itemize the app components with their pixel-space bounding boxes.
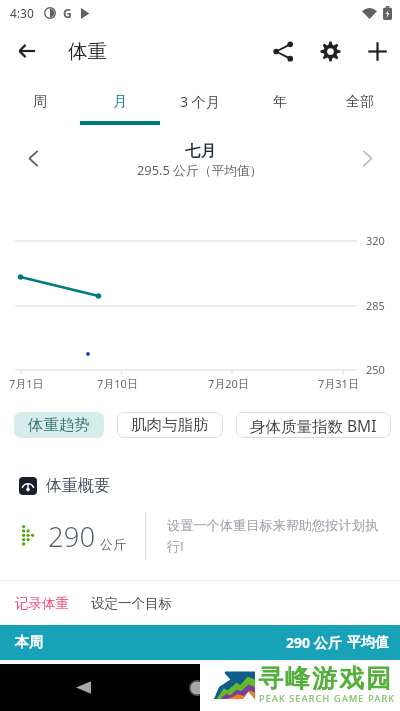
staticText: 七月 <box>185 141 216 161</box>
button[interactable]: 周 <box>0 78 80 125</box>
button[interactable]: Add <box>357 31 397 71</box>
staticText: 全部 <box>346 93 374 111</box>
staticText: 记录体重 <box>15 595 69 612</box>
staticText: 肌肉与脂肪 <box>131 415 209 435</box>
staticText: 295.5 公斤（平均值） <box>137 161 263 178</box>
button[interactable]: Back <box>7 31 47 71</box>
staticText: 285 <box>366 298 385 313</box>
button[interactable]: Settings <box>310 31 350 71</box>
button[interactable]: Back <box>76 680 91 695</box>
staticText: 250 <box>366 362 385 377</box>
button[interactable]: 本周 <box>0 625 400 660</box>
staticText: 体重概要 <box>46 476 110 496</box>
button[interactable]: Next month <box>349 140 385 176</box>
staticText: 本周 <box>15 634 43 652</box>
staticText: 7月31日 <box>318 376 359 391</box>
staticText: 320 <box>366 233 385 248</box>
staticText: G <box>63 5 72 21</box>
staticText: 设定一个目标 <box>91 595 172 612</box>
button[interactable]: 全部 <box>320 78 400 125</box>
button[interactable]: 体重趋势 <box>14 412 104 438</box>
button[interactable]: 月 <box>80 78 160 125</box>
staticText: 设置一个体重目标来帮助您按计划执行! <box>167 517 380 555</box>
button[interactable]: Share <box>263 31 303 71</box>
button[interactable]: 设定一个目标 <box>91 587 172 620</box>
staticText: 月 <box>113 93 127 111</box>
staticText: 7月10日 <box>97 376 138 391</box>
button[interactable]: Previous month <box>15 140 51 176</box>
button[interactable]: 身体质量指数 BMI <box>236 412 391 438</box>
staticText: 290 公斤 <box>286 633 342 652</box>
button[interactable]: 3 个月 <box>160 78 240 125</box>
staticText: 寻峰游戏园 <box>257 663 392 694</box>
staticText: 体重趋势 <box>28 415 90 435</box>
staticText: 7月1日 <box>9 376 44 391</box>
staticText: 平均值 <box>347 634 389 652</box>
staticText: 年 <box>273 93 287 111</box>
staticText: 7月20日 <box>208 376 249 391</box>
staticText: 3 个月 <box>180 92 220 111</box>
staticText: 4:30 <box>10 5 34 21</box>
button[interactable]: 年 <box>240 78 320 125</box>
button[interactable]: 记录体重 <box>15 587 69 620</box>
staticText: 身体质量指数 BMI <box>250 415 377 436</box>
button[interactable]: Home <box>189 680 205 696</box>
staticText: 周 <box>33 93 47 111</box>
button[interactable]: 肌肉与脂肪 <box>117 412 223 438</box>
staticText: 290 <box>48 518 96 555</box>
staticText: PEAK SEARCH GAME PARK <box>259 692 396 704</box>
staticText: 公斤 <box>100 536 126 552</box>
staticText: 体重 <box>68 39 107 64</box>
